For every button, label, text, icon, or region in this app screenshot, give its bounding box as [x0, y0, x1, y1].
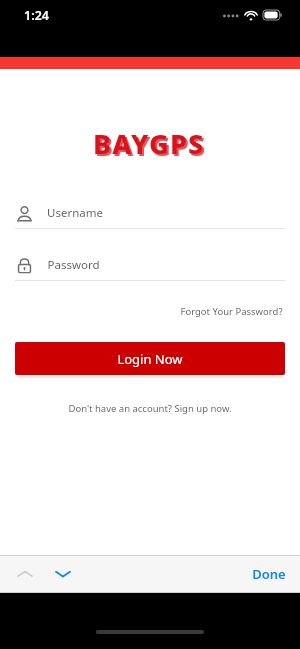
- staticText: Username: [47, 205, 103, 221]
- staticText: BAYGPS: [93, 125, 205, 162]
- button[interactable]: Done: [238, 559, 300, 589]
- staticText: Forgot Your Password?: [180, 305, 283, 318]
- staticText: Don't have an account? Sign up now.: [68, 402, 232, 415]
- staticText: BAYGPS: [95, 127, 207, 164]
- button[interactable]: Next field: [50, 561, 76, 587]
- staticText: Password: [47, 257, 100, 273]
- staticText: Done: [252, 565, 286, 583]
- button[interactable]: Password: [0, 250, 300, 281]
- staticText: 1:24: [24, 7, 49, 24]
- staticText: Login Now: [117, 350, 183, 368]
- button[interactable]: Previous field: [12, 561, 38, 587]
- button[interactable]: Forgot Your Password?: [178, 301, 285, 322]
- button[interactable]: Login Now: [15, 342, 285, 375]
- button[interactable]: Username: [0, 198, 300, 229]
- button[interactable]: Don't have an account? Sign up now.: [62, 398, 238, 419]
